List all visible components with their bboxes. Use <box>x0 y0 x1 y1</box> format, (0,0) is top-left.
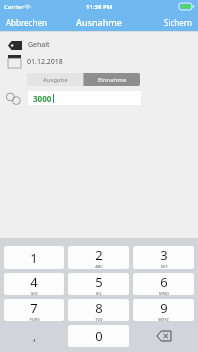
staticText: 2 <box>95 246 103 264</box>
button[interactable]: 3000 <box>28 91 141 105</box>
button[interactable]: 9 <box>133 299 194 321</box>
staticText: Gehalt <box>28 40 50 50</box>
button[interactable]: Datum <box>0 55 198 68</box>
staticText: Sichern <box>164 17 192 28</box>
staticText: 3 <box>160 246 168 264</box>
button[interactable]: Kategorie <box>0 40 198 50</box>
button[interactable]: 4 <box>4 273 64 295</box>
staticText: Einnahme <box>98 76 127 84</box>
other: Betrag <box>5 92 24 105</box>
staticText: Carrier <box>4 3 24 11</box>
staticText: DEF <box>160 264 168 269</box>
staticText: GHI <box>30 291 38 295</box>
staticText: 7 <box>30 299 38 317</box>
staticText: , <box>33 329 36 344</box>
staticText: 1 <box>30 249 38 267</box>
staticText: Ausnahme <box>76 16 123 28</box>
staticText: 8 <box>95 299 103 317</box>
button[interactable]: 6 <box>133 273 194 295</box>
staticText: Ausgabe <box>43 76 68 84</box>
staticText: JKL <box>96 291 102 295</box>
staticText: 4 <box>30 273 38 291</box>
button[interactable]: 5 <box>68 273 129 295</box>
button[interactable]: 0 <box>68 325 129 347</box>
button[interactable]: 1 <box>4 246 64 269</box>
button[interactable]: 8 <box>68 299 129 321</box>
staticText: WXYZ <box>158 317 169 321</box>
staticText: 11:58 PM <box>86 3 113 11</box>
other: Datum <box>8 55 21 68</box>
button[interactable]: , <box>2 325 66 347</box>
button[interactable]: Löschen <box>131 325 196 347</box>
button[interactable]: 2 <box>68 246 129 269</box>
staticText: PQRS <box>29 317 40 321</box>
staticText: ABC <box>95 264 103 269</box>
button[interactable]: Ausgabe <box>27 73 83 86</box>
button[interactable]: 3 <box>133 246 194 269</box>
staticText: 5 <box>95 273 103 291</box>
staticText: TUV <box>95 317 103 321</box>
button[interactable]: Sichern <box>158 15 198 30</box>
other: Kategorie <box>8 41 22 50</box>
staticText: 0 <box>95 327 103 345</box>
button[interactable]: Abbrechen <box>0 15 53 30</box>
staticText: Abbrechen <box>6 17 47 28</box>
staticText: 3000 <box>33 93 52 104</box>
staticText: 9 <box>160 299 168 317</box>
button[interactable]: 7 <box>4 299 64 321</box>
staticText: 01.12.2018 <box>27 57 63 67</box>
staticText: 6 <box>160 273 168 291</box>
button[interactable]: Einnahme <box>84 73 140 86</box>
staticText: MNO <box>159 291 169 295</box>
